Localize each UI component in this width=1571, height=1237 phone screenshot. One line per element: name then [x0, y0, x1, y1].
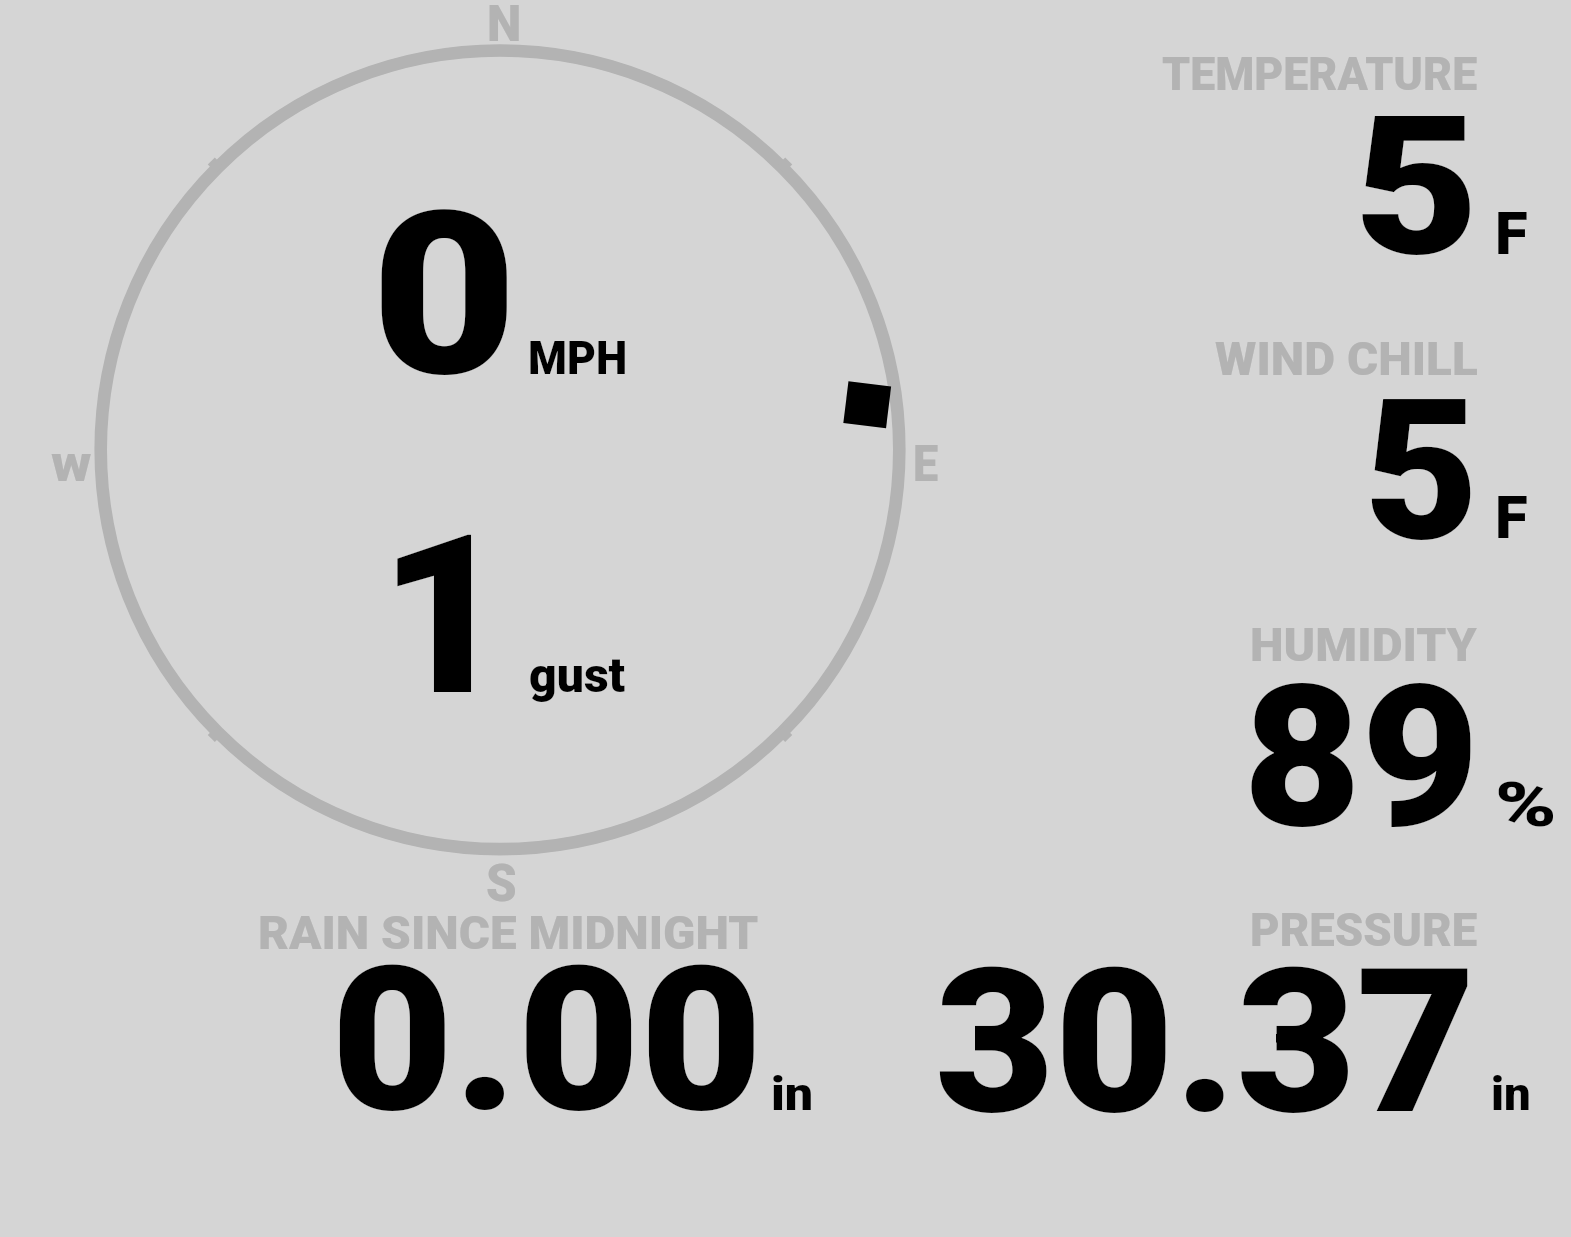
staticText: w — [51, 433, 92, 494]
button[interactable]: Gust 1 mile per hour — [380, 525, 640, 705]
staticText: RAIN SINCE MIDNIGHT — [258, 907, 759, 960]
staticText: 30.37 — [935, 925, 1476, 1159]
staticText: in — [1491, 1067, 1531, 1121]
staticText: PRESSURE — [1250, 904, 1478, 957]
staticText: gust — [529, 647, 625, 704]
button[interactable]: Humidity 89 percent — [1248, 620, 1563, 832]
staticText: 0.00 — [331, 923, 763, 1158]
staticText: % — [1495, 769, 1557, 841]
button[interactable]: Rain since midnight 0.00 inches — [255, 908, 815, 1117]
staticText: S — [486, 853, 517, 914]
button[interactable]: Temperature 5 degrees Fahrenheit — [1158, 50, 1533, 260]
staticText: F — [1495, 484, 1528, 553]
staticText: in — [771, 1067, 814, 1121]
staticText: HUMIDITY — [1250, 619, 1478, 672]
button[interactable]: Wind direction dial, wind from the east — [101, 50, 899, 849]
staticText: F — [1495, 200, 1528, 269]
staticText: WIND CHILL — [1215, 333, 1478, 386]
staticText: 1 — [379, 486, 510, 746]
staticText: 0 — [371, 163, 517, 428]
staticText: 5 — [1354, 73, 1480, 300]
staticText: 5 — [1364, 358, 1479, 586]
staticText: TEMPERATURE — [1162, 48, 1478, 101]
staticText: N — [487, 0, 522, 53]
button[interactable]: Pressure 30.37 inches — [935, 905, 1535, 1117]
button[interactable]: Wind speed 0 miles per hour — [370, 200, 640, 380]
staticText: MPH — [528, 332, 627, 386]
staticText: 89 — [1243, 643, 1479, 873]
button[interactable]: Wind chill 5 degrees Fahrenheit — [1210, 335, 1533, 545]
staticText: E — [913, 434, 939, 493]
